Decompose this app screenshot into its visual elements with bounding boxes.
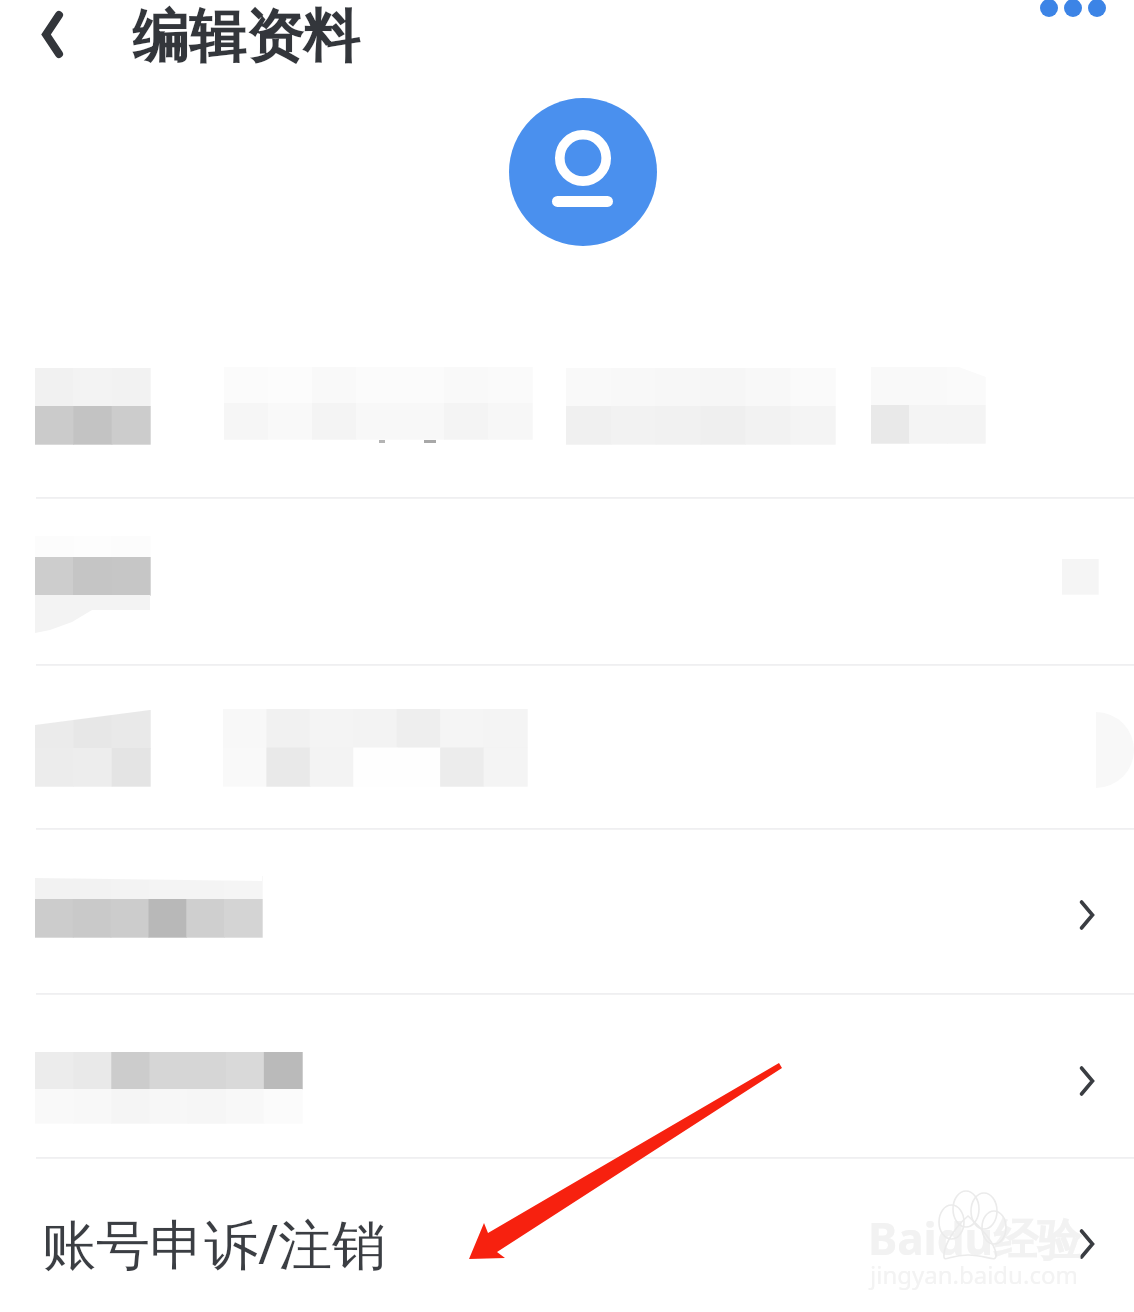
staticText: 编辑资料 bbox=[132, 1, 360, 73]
button[interactable]: Avatar setting bbox=[0, 499, 1134, 664]
staticText: 账号申诉/注销 bbox=[42, 1206, 387, 1280]
button[interactable]: Birthday bbox=[0, 995, 1134, 1157]
button[interactable]: More options bbox=[1036, 0, 1110, 25]
button[interactable]: Change avatar bbox=[509, 98, 657, 246]
button[interactable]: Signature bbox=[0, 666, 1134, 828]
button[interactable]: 账号申诉/注销 bbox=[0, 1159, 1134, 1312]
button[interactable]: Nickname bbox=[0, 320, 1134, 497]
staticText: Baidu经验 bbox=[868, 1208, 1082, 1268]
staticText: jingyan.baidu.com bbox=[870, 1258, 1078, 1291]
button[interactable]: Back bbox=[10, 0, 96, 78]
button[interactable]: Gender bbox=[0, 830, 1134, 993]
